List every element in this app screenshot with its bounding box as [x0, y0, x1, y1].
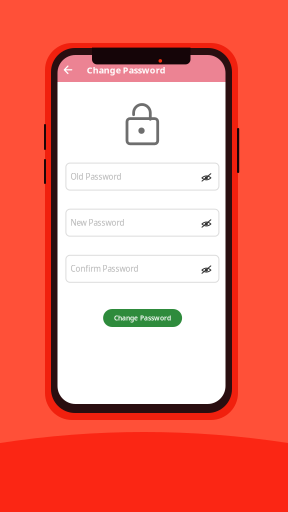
staticText: Confirm Password — [70, 263, 138, 274]
staticText: Change Password — [114, 313, 171, 323]
button[interactable]: New Password — [66, 209, 219, 236]
staticText: New Password — [70, 217, 124, 228]
staticText: Old Password — [70, 171, 121, 182]
button[interactable]: Confirm Password — [66, 255, 219, 282]
button[interactable]: Change Password — [103, 309, 182, 327]
button[interactable]: Back — [59, 61, 77, 79]
staticText: Change Password — [87, 64, 166, 76]
button[interactable]: Old Password — [66, 163, 219, 190]
